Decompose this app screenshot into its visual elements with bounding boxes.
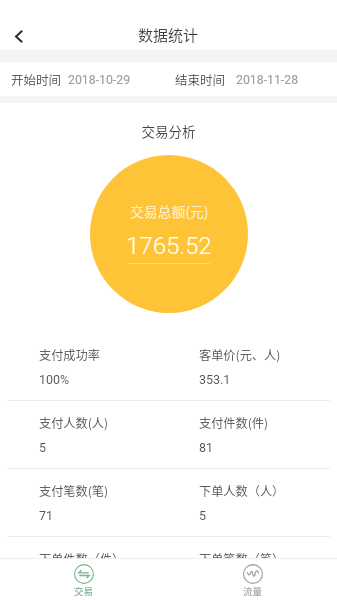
staticText: 2018-10-29 <box>68 73 131 87</box>
staticText: 数据统计 <box>138 24 199 46</box>
staticText: 71 <box>39 508 54 523</box>
staticText: 支付人数(人) <box>39 414 109 432</box>
button[interactable]: 交易 <box>0 559 168 600</box>
staticText: 支付件数(件) <box>199 414 269 432</box>
staticText: 下单笔数（笔） <box>199 550 285 568</box>
button[interactable]: 流量 <box>168 559 337 600</box>
staticText: 交易 <box>74 584 94 598</box>
staticText: 353.1 <box>199 372 231 387</box>
staticText: 流量 <box>243 584 263 598</box>
button[interactable]: Back <box>2 22 36 50</box>
staticText: 1765.52 <box>126 232 212 260</box>
staticText: 5 <box>39 440 47 455</box>
button[interactable]: 开始时间 <box>0 62 168 96</box>
staticText: 支付笔数(笔) <box>39 482 109 500</box>
staticText: 交易分析 <box>0 121 337 141</box>
staticText: 2018-11-28 <box>236 73 299 87</box>
staticText: 开始时间 <box>11 70 62 88</box>
staticText: 下单人数（人） <box>199 482 285 500</box>
staticText: 100% <box>39 372 70 387</box>
staticText: 5 <box>199 508 207 523</box>
staticText: 下单件数（件） <box>39 550 125 568</box>
staticText: 支付成功率 <box>39 346 100 364</box>
staticText: 结束时间 <box>175 70 226 88</box>
staticText: 客单价(元、人) <box>199 346 281 364</box>
button[interactable]: 结束时间 <box>168 62 337 96</box>
staticText: 交易总额(元) <box>130 201 209 221</box>
staticText: 81 <box>199 440 214 455</box>
